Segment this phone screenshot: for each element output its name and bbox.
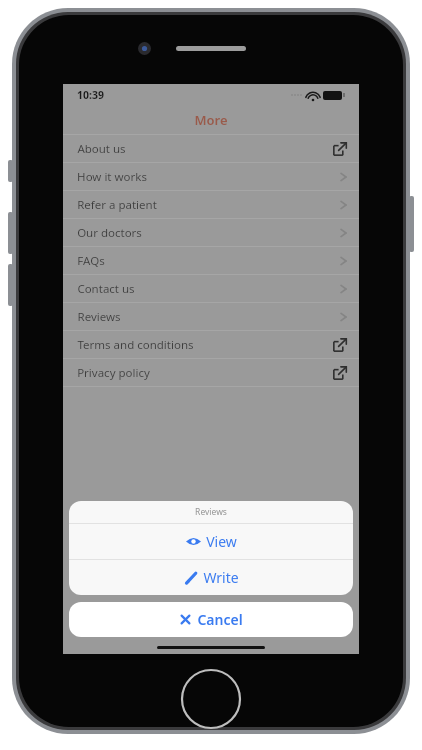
staticText: More xyxy=(194,111,228,129)
staticText: Pricing xyxy=(236,610,261,620)
button[interactable]: Terms and conditions xyxy=(63,331,359,358)
staticText: 10:39 xyxy=(77,88,104,102)
button[interactable]: More xyxy=(285,610,359,640)
staticText: FAQs xyxy=(77,253,105,269)
button[interactable]: Pricing xyxy=(211,610,285,640)
button[interactable]: Refer a patient xyxy=(63,191,359,218)
button[interactable]: How it works xyxy=(63,163,359,190)
button[interactable]: Write xyxy=(69,560,353,595)
staticText: View xyxy=(206,532,237,551)
button[interactable]: Reviews xyxy=(63,303,359,330)
button[interactable]: About us xyxy=(63,135,359,162)
staticText: Privacy policy xyxy=(77,365,150,381)
button[interactable]: News xyxy=(137,610,211,640)
other: Open Privacy policy xyxy=(333,366,347,380)
staticText: Terms and conditions xyxy=(77,337,194,353)
staticText: Contact us xyxy=(77,281,135,297)
staticText: How it works xyxy=(77,169,147,185)
staticText: Reviews xyxy=(77,309,121,325)
button[interactable]: Privacy policy xyxy=(63,359,359,386)
staticText: Reviews xyxy=(195,506,227,518)
other: Open Terms and conditions xyxy=(333,338,347,352)
button[interactable]: View xyxy=(69,524,353,559)
staticText: Our doctors xyxy=(77,225,142,241)
button[interactable]: Cancel xyxy=(69,602,353,637)
staticText: About us xyxy=(77,141,126,157)
button[interactable]: Contact us xyxy=(63,275,359,302)
staticText: Refer a patient xyxy=(77,197,157,213)
other: Open About us xyxy=(333,142,347,156)
button[interactable]: Book xyxy=(63,610,137,640)
staticText: Cancel xyxy=(197,610,243,629)
staticText: News xyxy=(164,610,184,620)
button[interactable]: Our doctors xyxy=(63,219,359,246)
button[interactable]: FAQs xyxy=(63,247,359,274)
staticText: Write xyxy=(203,568,239,587)
